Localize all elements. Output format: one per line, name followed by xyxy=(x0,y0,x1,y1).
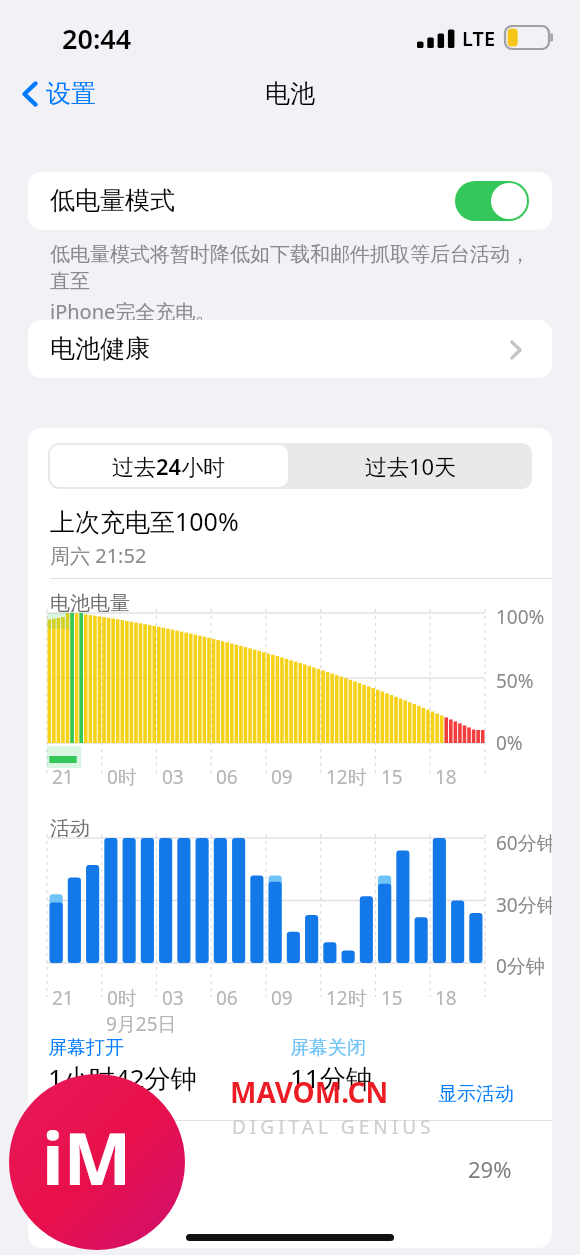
staticText: 50% xyxy=(496,668,534,694)
staticText: 09 xyxy=(271,764,293,790)
staticText: 0% xyxy=(496,730,523,756)
staticText: 18 xyxy=(435,985,457,1011)
staticText: DIGITAL GENIUS xyxy=(232,1114,435,1140)
button[interactable]: Low Power Mode toggle xyxy=(455,181,529,221)
staticText: 15 xyxy=(381,985,403,1011)
staticText: 9月25日 xyxy=(106,1011,177,1037)
staticText: 21 xyxy=(52,985,74,1011)
staticText: LTE xyxy=(462,25,496,52)
staticText: 低电量模式 xyxy=(50,185,175,216)
staticText: 电池健康 xyxy=(50,333,150,364)
staticText: 0时 xyxy=(107,764,137,790)
staticText: iPhone完全充电。 xyxy=(50,298,216,325)
button[interactable]: 显示活动 xyxy=(434,1078,518,1110)
staticText: 15 xyxy=(381,764,403,790)
staticText: 11分钟 xyxy=(290,1060,372,1096)
staticText: 0分钟 xyxy=(496,953,545,979)
button[interactable]: 低电量模式 xyxy=(28,172,552,230)
staticText: 显示活动 xyxy=(438,1082,514,1106)
staticText: 直播 xyxy=(50,1146,96,1175)
staticText: iM xyxy=(42,1108,132,1206)
staticText: 屏幕关闭 xyxy=(290,1036,366,1060)
staticText: MAVOM.CN xyxy=(230,1073,389,1111)
staticText: 活动 xyxy=(50,816,90,841)
staticText: 30分钟 xyxy=(496,892,552,918)
staticText: 06 xyxy=(216,985,238,1011)
staticText: 0时 xyxy=(107,985,137,1011)
staticText: 21 xyxy=(52,764,74,790)
staticText: 60分钟 xyxy=(496,830,552,856)
staticText: 06 xyxy=(216,764,238,790)
staticText: 100% xyxy=(496,604,545,630)
staticText: 屏幕打开 xyxy=(48,1036,124,1060)
staticText: 12时 xyxy=(326,764,367,790)
button[interactable]: 设置 xyxy=(14,72,104,115)
button[interactable]: 电池健康 xyxy=(28,320,552,378)
staticText: 电池电量 xyxy=(50,591,130,616)
staticText: 03 xyxy=(162,985,184,1011)
staticText: 电池 xyxy=(265,78,315,109)
staticText: 18 xyxy=(435,764,457,790)
staticText: 周六 21:52 xyxy=(50,542,147,569)
button[interactable]: 过去24小时 xyxy=(48,443,290,489)
staticText: 1小时42分钟 xyxy=(48,1060,197,1096)
staticText: 29% xyxy=(468,1154,512,1184)
staticText: 设置 xyxy=(46,78,96,109)
staticText: 上次充电至100% xyxy=(50,504,239,538)
staticText: 低电量模式将暂时降低如下载和邮件抓取等后台活动，直至 xyxy=(50,242,540,294)
staticText: 过去24小时 xyxy=(112,451,226,481)
button[interactable]: 过去10天 xyxy=(290,443,532,489)
staticText: 过去10天 xyxy=(365,451,457,481)
staticText: 12时 xyxy=(326,985,367,1011)
staticText: 09 xyxy=(271,985,293,1011)
staticText: 20:44 xyxy=(62,20,132,57)
staticText: 03 xyxy=(162,764,184,790)
